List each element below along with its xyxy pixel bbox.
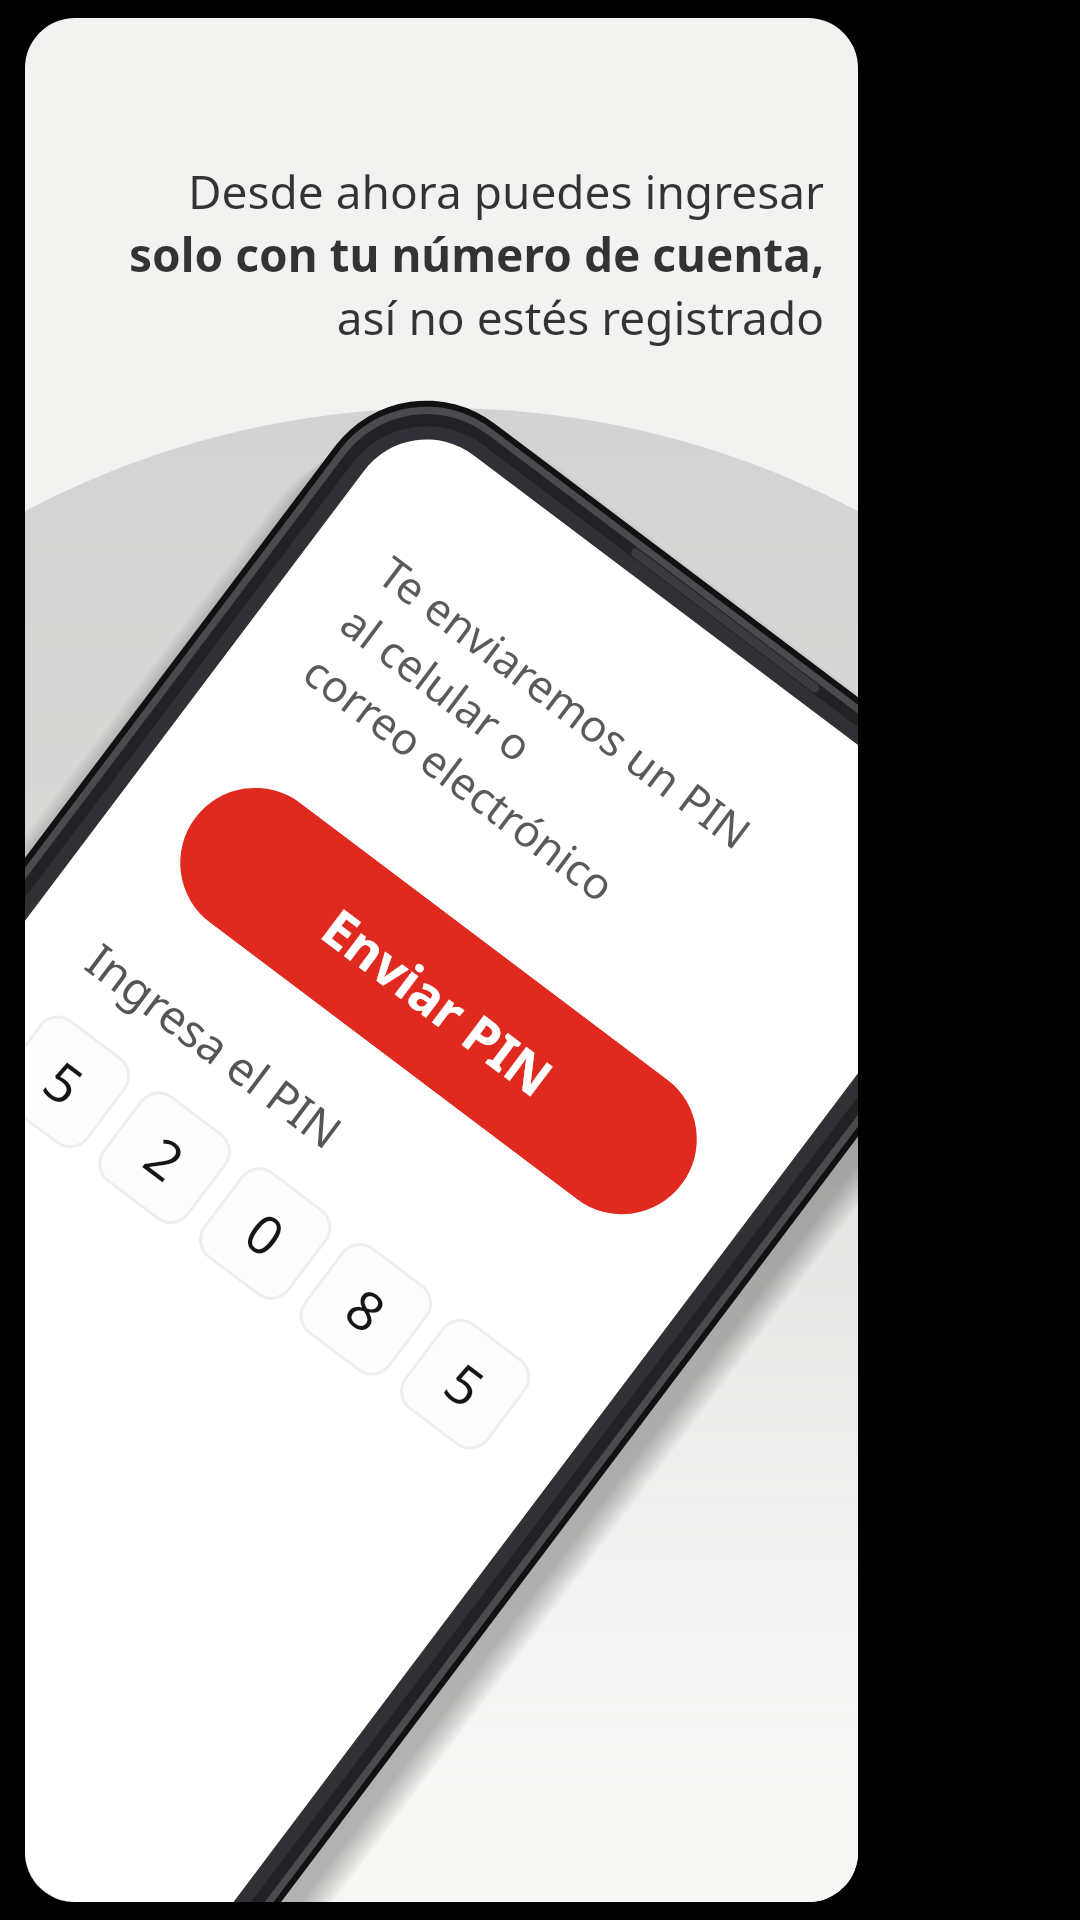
staticText: así no estés registrado — [336, 286, 824, 349]
button[interactable]: 0 — [190, 1158, 341, 1309]
staticText: 2 — [130, 1119, 200, 1197]
staticText: Enviar PIN — [309, 891, 568, 1111]
button[interactable]: 2 — [89, 1082, 240, 1233]
staticText: 5 — [431, 1345, 500, 1423]
staticText: solo con tu número de cuenta, — [128, 223, 824, 286]
button[interactable]: 8 — [290, 1234, 441, 1385]
staticText: Te enviaremos un PIN al celular o correo… — [292, 542, 764, 961]
staticText: 5 — [30, 1043, 99, 1121]
staticText: 0 — [231, 1195, 300, 1273]
staticText: Desde ahora puedes ingresar — [188, 160, 824, 223]
button[interactable]: 5 — [391, 1310, 540, 1459]
button[interactable]: 5 — [25, 1006, 140, 1157]
button[interactable]: Enviar PIN — [150, 758, 727, 1244]
staticText: Ingresa el PIN — [74, 929, 355, 1163]
staticText: 8 — [332, 1271, 401, 1349]
